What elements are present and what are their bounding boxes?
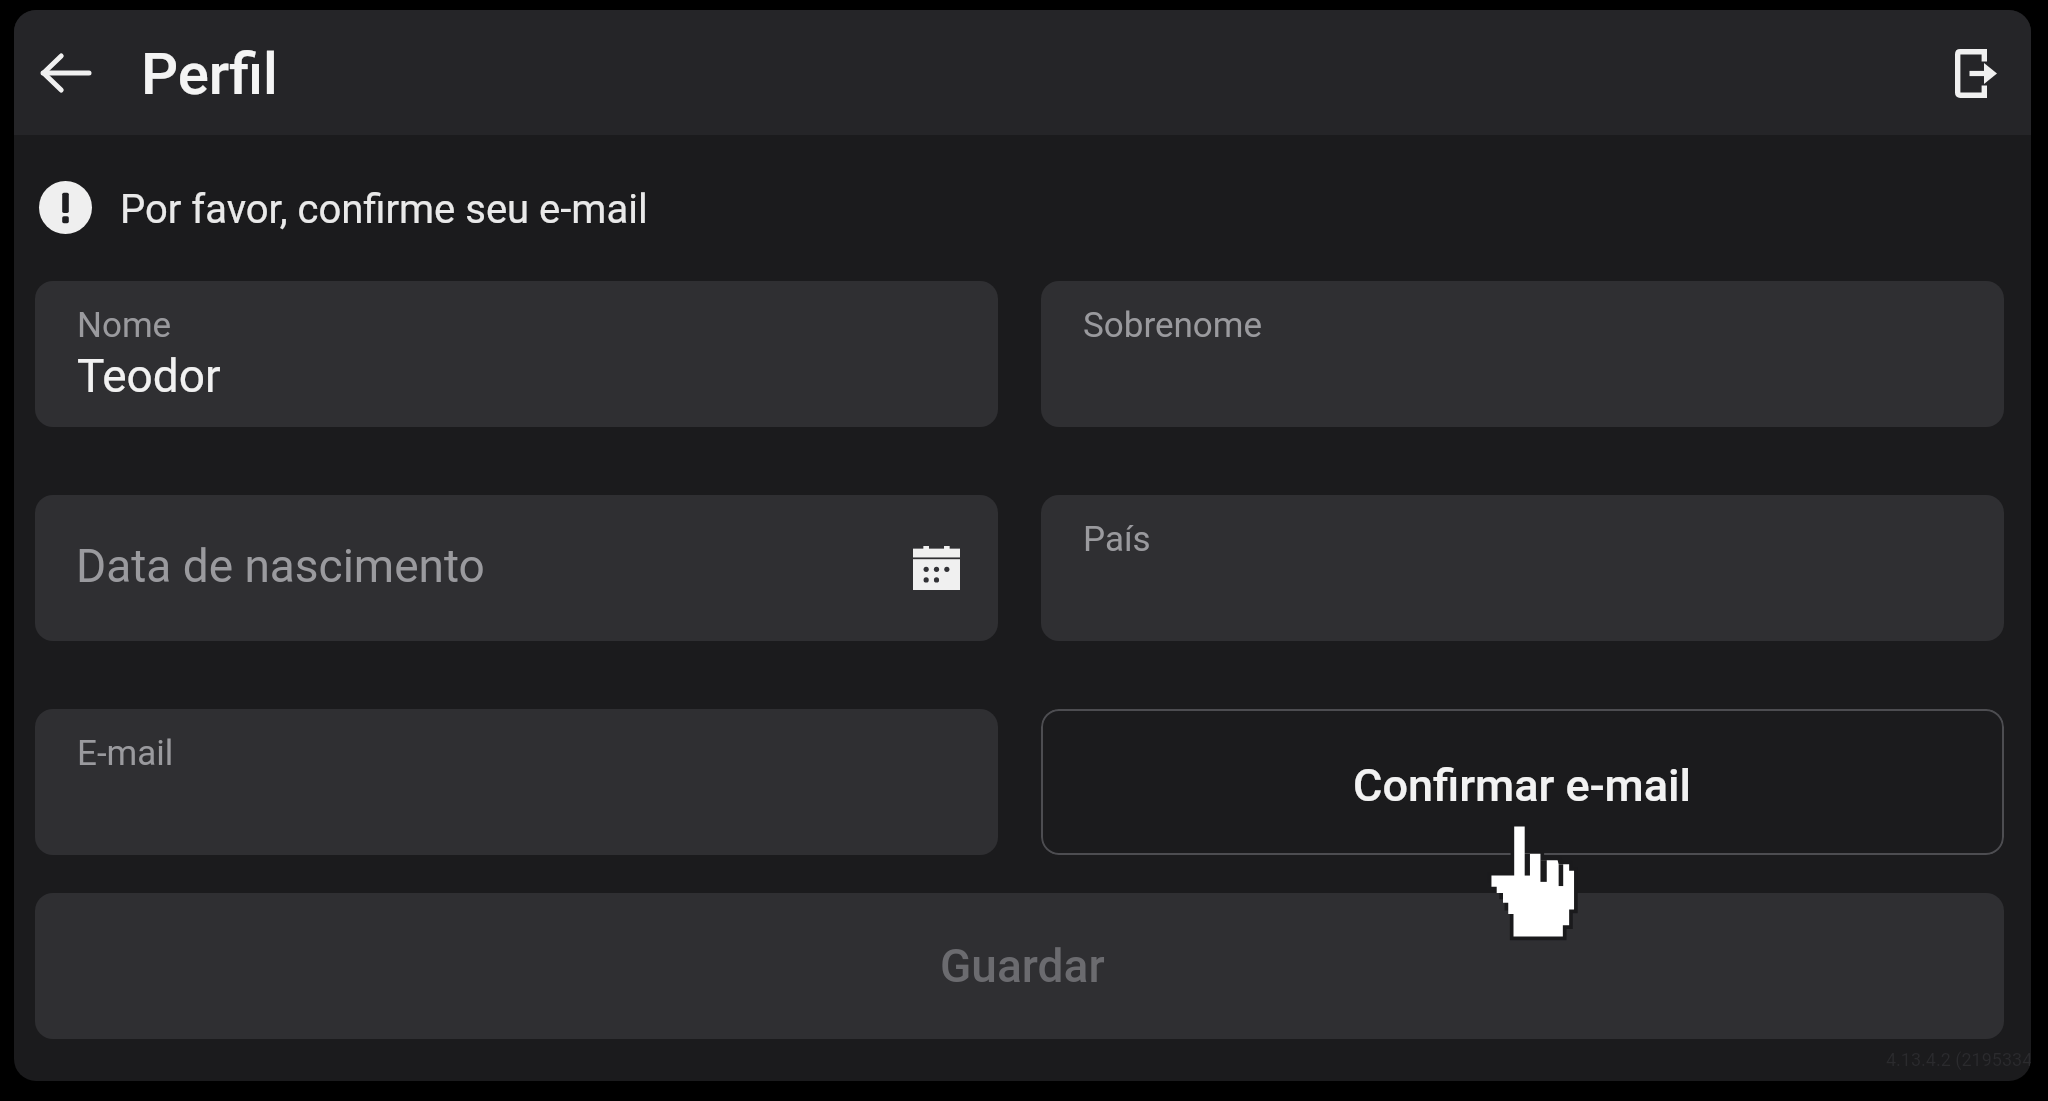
staticText: Nome bbox=[77, 305, 172, 346]
button[interactable]: Nome bbox=[35, 281, 998, 427]
staticText: País bbox=[1083, 519, 1151, 560]
button[interactable]: Data de nascimento bbox=[35, 495, 998, 641]
staticText: 4.13.4.2 (2195334) bbox=[1886, 1049, 2031, 1070]
staticText: Por favor, confirme seu e-mail bbox=[120, 186, 648, 233]
staticText: E-mail bbox=[77, 733, 174, 774]
staticText: Perfil bbox=[141, 40, 278, 108]
button[interactable]: País bbox=[1041, 495, 2004, 641]
staticText: Sobrenome bbox=[1083, 305, 1263, 346]
button[interactable]: Guardar bbox=[35, 893, 2004, 1039]
button[interactable]: Logout bbox=[1920, 17, 2031, 129]
staticText: Guardar bbox=[940, 939, 1105, 993]
staticText: Data de nascimento bbox=[76, 539, 485, 593]
staticText: Confirmar e-mail bbox=[1353, 759, 1692, 812]
staticText: Teodor bbox=[77, 349, 221, 403]
button[interactable]: Back bbox=[14, 17, 122, 129]
button[interactable]: Confirmar e-mail bbox=[1041, 709, 2004, 855]
button[interactable]: E-mail bbox=[35, 709, 998, 855]
button[interactable]: Sobrenome bbox=[1041, 281, 2004, 427]
